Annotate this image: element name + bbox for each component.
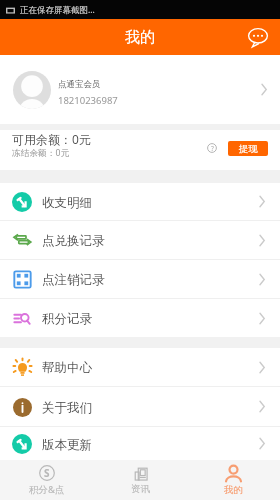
staticText: ?	[211, 144, 214, 153]
staticText: 关于我们	[42, 400, 92, 416]
button[interactable]: 点注销记录	[0, 260, 280, 298]
staticText: 可用余额：0元	[12, 131, 91, 147]
staticText: 点通宝会员	[58, 79, 101, 90]
button[interactable]: 我的	[187, 460, 280, 500]
button[interactable]: Help	[205, 141, 219, 155]
button[interactable]: 收支明细	[0, 183, 280, 220]
staticText: 积分记录	[42, 311, 92, 327]
button[interactable]: Messages	[245, 24, 271, 50]
button[interactable]: 资讯	[94, 460, 187, 500]
button[interactable]: 帮助中心	[0, 348, 280, 386]
staticText: 收支明细	[42, 195, 92, 211]
staticText: 18210236987	[58, 94, 118, 107]
button[interactable]: S	[0, 460, 94, 500]
button[interactable]: 关于我们	[0, 387, 280, 426]
staticText: 正在保存屏幕截图...	[20, 4, 95, 16]
staticText: S	[44, 466, 50, 480]
button[interactable]: 版本更新	[0, 427, 280, 460]
staticText: 帮助中心	[42, 360, 92, 376]
staticText: 冻结余额：0元	[12, 147, 70, 159]
button[interactable]: 提现	[228, 141, 268, 156]
staticText: 提现	[239, 143, 258, 155]
staticText: 我的	[224, 484, 243, 496]
button[interactable]: 点兑换记录	[0, 221, 280, 259]
staticText: 我的	[125, 28, 155, 47]
staticText: 积分&点	[29, 483, 65, 496]
staticText: 点兑换记录	[42, 233, 105, 249]
staticText: 资讯	[131, 483, 150, 495]
staticText: 点注销记录	[42, 272, 105, 288]
staticText: 版本更新	[42, 437, 92, 453]
button[interactable]: 积分记录	[0, 299, 280, 337]
button[interactable]: 点通宝会员	[0, 55, 280, 124]
